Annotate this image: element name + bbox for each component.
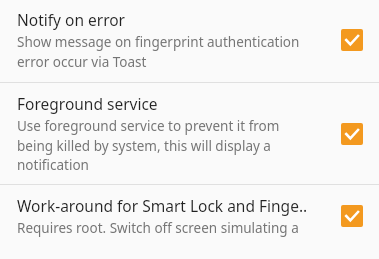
staticText: Notify on error bbox=[17, 9, 126, 30]
button[interactable]: Foreground service, enabled bbox=[341, 123, 363, 145]
button[interactable]: Foreground service bbox=[0, 83, 379, 184]
staticText: Use foreground service to prevent it fro… bbox=[17, 117, 280, 174]
staticText: Requires root. Switch off screen simulat… bbox=[17, 219, 299, 237]
button[interactable]: Work-around for Smart Lock and Fingerpri… bbox=[341, 205, 363, 227]
button[interactable]: Notify on error bbox=[0, 0, 379, 82]
button[interactable]: Work-around for Smart Lock and Finge.. bbox=[0, 185, 379, 247]
staticText: Foreground service bbox=[17, 93, 158, 114]
staticText: Show message on fingerprint authenticati… bbox=[17, 33, 300, 71]
button[interactable]: Notify on error, enabled bbox=[341, 29, 363, 51]
staticText: Work-around for Smart Lock and Finge.. bbox=[17, 195, 308, 216]
